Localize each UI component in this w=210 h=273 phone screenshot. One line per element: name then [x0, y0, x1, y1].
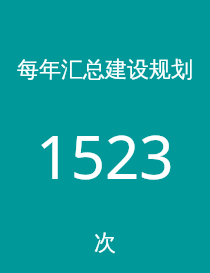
staticText: 每年汇总建设规划	[6, 56, 204, 84]
staticText: 次	[0, 229, 210, 257]
staticText: 1523	[0, 115, 210, 197]
